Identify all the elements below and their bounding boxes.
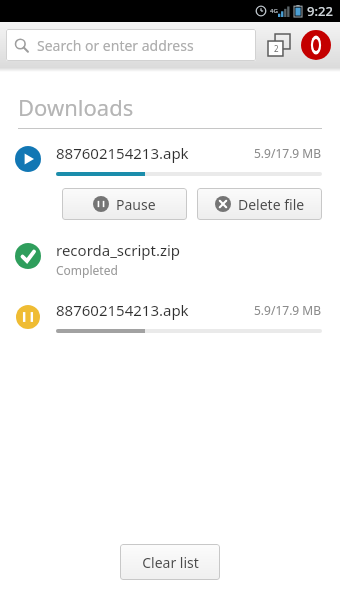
staticText: 2: [274, 43, 279, 54]
button[interactable]: Paused download: [0, 300, 340, 333]
staticText: 887602154213.apk: [56, 143, 254, 163]
staticText: Search or enter address: [37, 36, 194, 55]
staticText: Clear list: [142, 553, 199, 572]
button[interactable]: Completed download: [14, 242, 42, 270]
staticText: 4G: [270, 7, 278, 15]
staticText: 9:22: [307, 2, 333, 20]
staticText: Downloads: [18, 92, 134, 122]
button[interactable]: Resume download: [14, 145, 42, 173]
staticText: Completed: [56, 262, 118, 278]
staticText: 5.9/17.9 MB: [254, 145, 322, 161]
button[interactable]: Pause: [62, 188, 187, 220]
staticText: 887602154213.apk: [56, 300, 254, 320]
staticText: Pause: [116, 195, 156, 214]
button[interactable]: Clear list: [120, 544, 220, 580]
button[interactable]: Resume download: [0, 143, 340, 176]
staticText: Delete file: [238, 195, 305, 214]
staticText: 5.9/17.9 MB: [254, 302, 322, 318]
button[interactable]: Delete file: [197, 188, 322, 220]
button[interactable]: Completed download: [0, 240, 340, 278]
button[interactable]: Search or enter address: [6, 29, 256, 61]
staticText: recorda_script.zip: [56, 240, 181, 260]
button[interactable]: Tabs: [264, 30, 294, 60]
button[interactable]: Opera menu: [298, 27, 334, 63]
button[interactable]: Paused download: [14, 303, 42, 331]
